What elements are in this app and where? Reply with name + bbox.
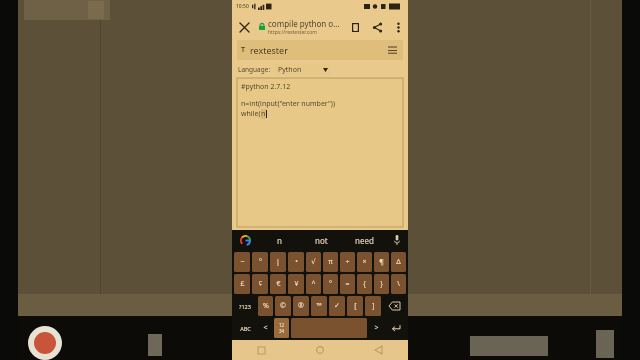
staticText: while( bbox=[241, 109, 261, 119]
button[interactable]: × bbox=[357, 252, 372, 272]
button[interactable]: ?123 bbox=[234, 296, 256, 316]
staticText: need bbox=[355, 235, 374, 246]
staticText: % bbox=[263, 301, 269, 311]
button[interactable]: { bbox=[357, 274, 372, 294]
staticText: n bbox=[261, 109, 266, 119]
staticText: ° bbox=[329, 279, 332, 289]
staticText: • bbox=[295, 257, 298, 267]
button[interactable]: ABC bbox=[234, 318, 256, 338]
staticText: rextester bbox=[250, 44, 288, 56]
button[interactable]: ^ bbox=[306, 274, 321, 294]
button[interactable]: √ bbox=[306, 252, 321, 272]
button[interactable]: Menu bbox=[385, 43, 399, 57]
staticText: ¶ bbox=[379, 257, 384, 267]
staticText: ?123 bbox=[239, 303, 251, 310]
staticText: 34 bbox=[279, 328, 285, 334]
button[interactable]: Google bbox=[232, 235, 258, 246]
button[interactable]: } bbox=[374, 274, 389, 294]
staticText: Δ bbox=[396, 257, 401, 267]
button[interactable]: \ bbox=[391, 274, 406, 294]
staticText: ® bbox=[298, 301, 304, 311]
staticText: ✓ bbox=[334, 302, 340, 310]
staticText: < bbox=[263, 323, 268, 333]
staticText: √ bbox=[311, 258, 316, 266]
staticText: > bbox=[374, 323, 379, 333]
staticText: € bbox=[276, 279, 281, 289]
button[interactable]: £ bbox=[234, 274, 250, 294]
staticText: × bbox=[362, 257, 367, 267]
button[interactable]: not bbox=[300, 230, 343, 250]
button[interactable]: < bbox=[258, 318, 272, 338]
staticText: \ bbox=[397, 279, 400, 289]
button[interactable]: % bbox=[258, 296, 273, 316]
staticText: T bbox=[241, 45, 246, 55]
staticText: not bbox=[315, 235, 328, 246]
button[interactable]: > bbox=[369, 318, 383, 338]
staticText: = bbox=[345, 279, 350, 289]
staticText: n=int(input("enter number")) bbox=[241, 99, 336, 109]
button[interactable]: need bbox=[343, 230, 386, 250]
staticText: { bbox=[363, 279, 366, 289]
staticText: ÷ bbox=[345, 257, 350, 267]
staticText: Language: bbox=[238, 65, 271, 74]
staticText: ~ bbox=[240, 257, 245, 267]
staticText: #python 2.7.12 bbox=[241, 82, 291, 92]
staticText: ° bbox=[259, 257, 262, 267]
staticText: ^ bbox=[311, 279, 316, 289]
button[interactable]: ÷ bbox=[340, 252, 355, 272]
button[interactable]: Share bbox=[366, 16, 388, 38]
button[interactable]: More options bbox=[388, 17, 408, 37]
button[interactable]: Voice input bbox=[386, 235, 408, 245]
button[interactable]: T bbox=[241, 40, 399, 60]
button[interactable]: Enter bbox=[385, 318, 406, 338]
staticText: ™ bbox=[316, 301, 322, 311]
button[interactable]: 12 bbox=[274, 318, 289, 338]
button[interactable]: ¶ bbox=[374, 252, 389, 272]
button[interactable]: © bbox=[275, 296, 291, 316]
button[interactable]: ™ bbox=[311, 296, 327, 316]
staticText: compile python o... bbox=[268, 18, 340, 29]
staticText: } bbox=[380, 279, 383, 289]
staticText: 12 bbox=[279, 322, 285, 328]
staticText: ¢ bbox=[258, 279, 263, 289]
button[interactable]: Home bbox=[290, 340, 349, 360]
button[interactable]: ¢ bbox=[252, 274, 268, 294]
staticText: n bbox=[277, 235, 282, 246]
button[interactable]: ✓ bbox=[329, 296, 345, 316]
staticText: ] bbox=[372, 301, 375, 311]
button[interactable]: ° bbox=[323, 274, 338, 294]
staticText: | bbox=[276, 257, 280, 267]
button[interactable]: Python bbox=[278, 64, 328, 75]
staticText: 10:50 bbox=[236, 3, 249, 10]
button[interactable]: Bookmark bbox=[344, 16, 366, 38]
button[interactable]: ¥ bbox=[288, 274, 304, 294]
staticText: ABC bbox=[240, 325, 251, 332]
button[interactable]: Back bbox=[349, 340, 408, 360]
button[interactable]: Recents bbox=[232, 340, 290, 360]
staticText: https://rextester.com bbox=[268, 29, 317, 36]
staticText: π bbox=[328, 257, 333, 267]
button[interactable]: compile python o... bbox=[268, 18, 344, 36]
staticText: ¥ bbox=[294, 279, 299, 289]
button[interactable]: | bbox=[270, 252, 286, 272]
button[interactable]: ~ bbox=[234, 252, 250, 272]
button[interactable]: ® bbox=[293, 296, 309, 316]
button[interactable]: € bbox=[270, 274, 286, 294]
button[interactable]: n bbox=[258, 230, 300, 250]
button[interactable]: ] bbox=[365, 296, 381, 316]
button[interactable]: #python 2.7.12 bbox=[238, 79, 402, 226]
button[interactable]: • bbox=[288, 252, 304, 272]
button[interactable]: Δ bbox=[391, 252, 406, 272]
button[interactable]: Close bbox=[232, 15, 256, 39]
staticText: Python bbox=[278, 65, 302, 75]
staticText: £ bbox=[240, 279, 245, 289]
button[interactable]: ° bbox=[252, 252, 268, 272]
button[interactable]: Backspace bbox=[383, 296, 406, 316]
staticText: © bbox=[280, 301, 286, 311]
button[interactable]: π bbox=[323, 252, 338, 272]
button[interactable]: = bbox=[340, 274, 355, 294]
button[interactable]: [ bbox=[347, 296, 363, 316]
staticText: [ bbox=[354, 301, 357, 311]
